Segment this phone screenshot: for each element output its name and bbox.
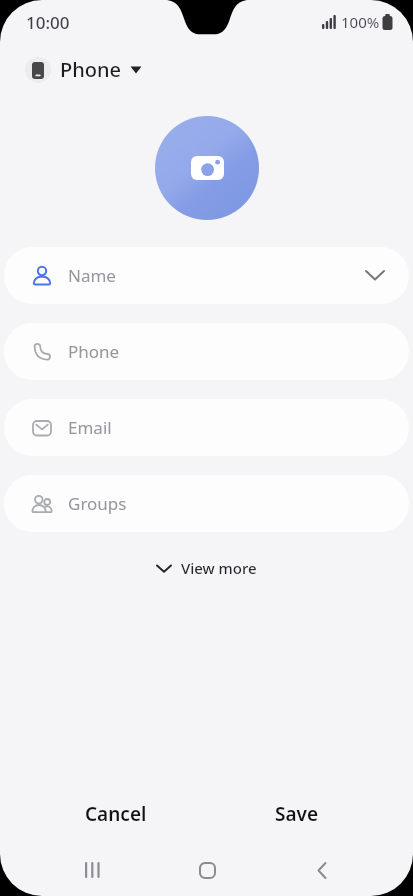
staticText: Groups <box>68 492 127 515</box>
button[interactable] <box>155 116 259 220</box>
button[interactable] <box>185 848 229 892</box>
staticText: View more <box>181 558 257 578</box>
staticText: Cancel <box>85 801 147 827</box>
button[interactable]: Groups <box>4 475 409 532</box>
staticText: 100% <box>341 12 380 32</box>
staticText: Phone <box>68 340 120 363</box>
staticText: Email <box>68 416 112 439</box>
button[interactable]: Phone <box>25 56 142 83</box>
staticText: Save <box>275 801 319 827</box>
button[interactable]: Cancel <box>26 790 206 838</box>
button[interactable]: Phone <box>4 323 409 380</box>
staticText: Name <box>68 264 116 287</box>
button[interactable] <box>70 848 114 892</box>
button[interactable]: Save <box>206 790 387 838</box>
button[interactable]: Email <box>4 399 409 456</box>
staticText: Phone <box>60 56 121 83</box>
staticText: 10:00 <box>26 11 70 34</box>
button[interactable]: Name <box>4 247 409 304</box>
button[interactable]: View more <box>148 550 265 586</box>
button[interactable] <box>300 848 344 892</box>
